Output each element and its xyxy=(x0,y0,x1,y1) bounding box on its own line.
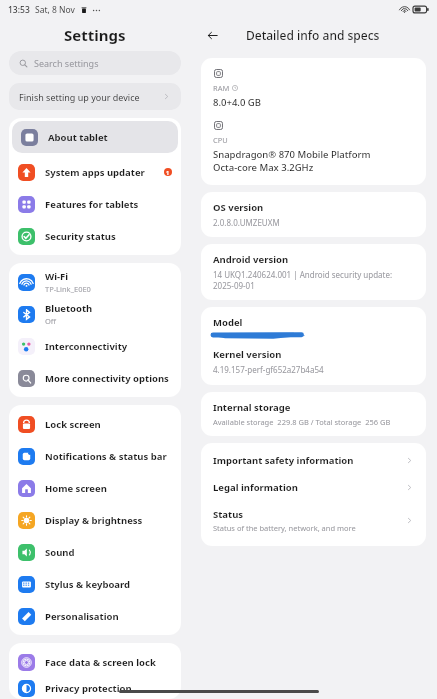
button[interactable]: Wi-Fi xyxy=(9,266,181,298)
staticText: 8.0+4.0 GB xyxy=(213,96,261,109)
staticText: Search settings xyxy=(34,57,99,69)
staticText: Privacy protection xyxy=(45,682,132,695)
staticText: Home screen xyxy=(45,482,107,495)
staticText: System apps updater xyxy=(45,166,145,179)
staticText: 4.19.157-perf-gf652a27b4a54 xyxy=(213,364,324,375)
button[interactable]: Legal information xyxy=(201,474,426,501)
button[interactable]: Face data & screen lock xyxy=(9,646,181,678)
button[interactable]: Sound xyxy=(9,536,181,568)
staticText: Settings xyxy=(64,25,126,45)
button[interactable]: Status xyxy=(201,501,426,540)
staticText: Face data & screen lock xyxy=(45,656,156,669)
button[interactable]: Features for tablets xyxy=(9,188,181,220)
staticText: Display & brightness xyxy=(45,514,143,527)
staticText: Sat, 8 Nov xyxy=(35,4,75,16)
staticText: Model xyxy=(213,316,243,329)
staticText: Wi-Fi xyxy=(45,270,69,283)
button[interactable]: Bluetooth xyxy=(9,298,181,330)
staticText: 1 xyxy=(166,169,170,176)
button[interactable]: Home screen xyxy=(9,472,181,504)
staticText: Lock screen xyxy=(45,418,101,431)
staticText: Security status xyxy=(45,230,116,243)
staticText: 14 UKQ1.240624.001 | Android security up… xyxy=(213,269,393,280)
button[interactable]: Interconnectivity xyxy=(9,330,181,362)
button[interactable]: More connectivity options xyxy=(9,362,181,394)
staticText: Personalisation xyxy=(45,610,119,623)
staticText: RAM xyxy=(213,83,230,93)
staticText: Finish setting up your device xyxy=(19,91,140,103)
button[interactable]: Important safety information xyxy=(201,447,426,474)
staticText: Sound xyxy=(45,546,75,559)
button[interactable]: Notifications & status bar xyxy=(9,440,181,472)
staticText: Status xyxy=(213,508,244,521)
staticText: Internal storage xyxy=(213,401,291,414)
button[interactable]: Security status xyxy=(9,220,181,252)
staticText: Off xyxy=(45,316,57,326)
button[interactable]: About tablet xyxy=(12,121,178,153)
button[interactable]: Finish setting up your device xyxy=(9,83,181,110)
button[interactable]: Privacy protection xyxy=(9,678,181,699)
button[interactable]: Back xyxy=(202,25,222,45)
staticText: 2.0.8.0.UMZEUXM xyxy=(213,217,280,228)
button[interactable]: Stylus & keyboard xyxy=(9,568,181,600)
staticText: TP-Link_E0E0 xyxy=(45,284,91,294)
staticText: About tablet xyxy=(48,131,108,144)
staticText: Bluetooth xyxy=(45,302,93,315)
staticText: Legal information xyxy=(213,481,298,494)
staticText: Status of the battery, network, and more xyxy=(213,523,356,533)
staticText: 13:53 xyxy=(8,4,30,16)
staticText: Notifications & status bar xyxy=(45,450,167,463)
staticText: Features for tablets xyxy=(45,198,139,211)
staticText: Snapdragon® 870 Mobile Platform xyxy=(213,148,371,161)
staticText: Kernel version xyxy=(213,348,282,361)
button[interactable]: Display & brightness xyxy=(9,504,181,536)
staticText: Stylus & keyboard xyxy=(45,578,131,591)
button[interactable]: Personalisation xyxy=(9,600,181,632)
staticText: Detailed info and specs xyxy=(246,27,380,43)
staticText: Octa-core Max 3.2GHz xyxy=(213,161,314,174)
staticText: Available storage 229.8 GB / Total stora… xyxy=(213,417,391,427)
staticText: Android version xyxy=(213,253,289,266)
staticText: 2025-09-01 xyxy=(213,280,255,291)
button[interactable]: System apps updater xyxy=(9,156,181,188)
staticText: Important safety information xyxy=(213,454,354,467)
staticText: More connectivity options xyxy=(45,372,169,385)
button[interactable]: Lock screen xyxy=(9,408,181,440)
staticText: OS version xyxy=(213,201,264,214)
staticText: Interconnectivity xyxy=(45,340,128,353)
button[interactable]: Search settings xyxy=(9,51,181,75)
staticText: CPU xyxy=(213,135,228,145)
